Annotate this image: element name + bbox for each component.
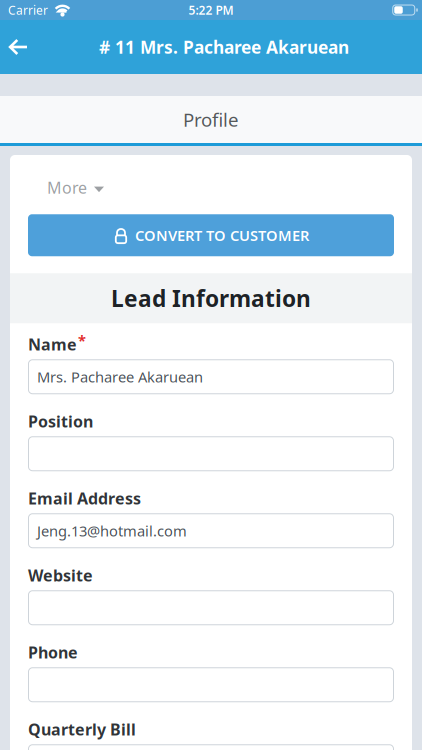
staticText: Mrs. Pacharee Akaruean	[37, 367, 203, 386]
staticText: Jeng.13@hotmail.com	[37, 521, 187, 540]
staticText: Email Address	[28, 488, 141, 509]
staticText: Quarterly Bill	[28, 719, 136, 740]
staticText: Position	[28, 411, 93, 432]
staticText: Name	[28, 334, 77, 355]
staticText: More	[47, 177, 87, 198]
staticText: Carrier	[8, 2, 48, 18]
button[interactable]: Profile	[0, 96, 422, 143]
button[interactable]: Back	[0, 20, 37, 74]
button[interactable]: More	[47, 177, 104, 198]
staticText: CONVERT TO CUSTOMER	[135, 225, 309, 245]
staticText: Profile	[183, 107, 239, 132]
staticText: Phone	[28, 642, 78, 663]
staticText: Website	[28, 565, 93, 586]
staticText: Lead Information	[111, 283, 311, 313]
staticText: *	[78, 330, 86, 350]
staticText: 5:22 PM	[188, 2, 233, 18]
button[interactable]: CONVERT TO CUSTOMER	[28, 214, 394, 256]
staticText: # 11 Mrs. Pacharee Akaruean	[99, 35, 349, 58]
